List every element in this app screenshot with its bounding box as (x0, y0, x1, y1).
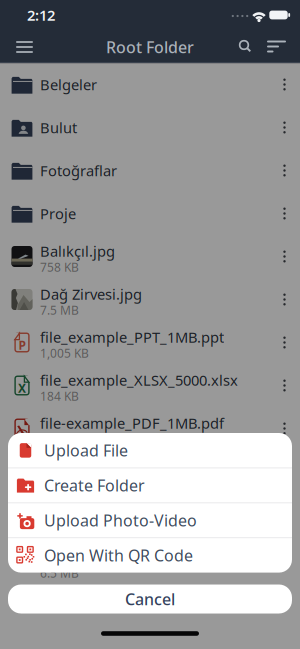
staticText: Bulut (40, 118, 77, 137)
button[interactable]: Cancel (8, 584, 292, 613)
button[interactable]: More options for Belgeler (275, 73, 293, 95)
staticText: Belgeler (40, 75, 97, 94)
button[interactable]: Upload File (8, 433, 292, 468)
staticText: Root Folder (106, 36, 194, 58)
button[interactable]: More options for file_example_PPT_1MB.pp… (275, 331, 293, 353)
staticText: Upload Photo-Video (44, 510, 197, 531)
staticText: X (18, 380, 26, 396)
button[interactable]: Upload Photo-Video (8, 503, 292, 538)
button[interactable]: More options for Balıkçıl.jpg (275, 245, 293, 267)
staticText: file-example_PDF_1MB.pdf (40, 413, 224, 433)
staticText: 7.5 MB (40, 302, 79, 318)
button[interactable]: Belgeler (0, 63, 300, 106)
staticText: Proje (40, 204, 76, 223)
staticText: 2:12 (27, 5, 55, 25)
button[interactable]: More options for Proje (275, 202, 293, 224)
button[interactable]: file_example_PPT_1MB.ppt (0, 321, 300, 364)
staticText: 6.5 MB (40, 431, 79, 447)
button[interactable]: Create Folder (8, 468, 292, 503)
button[interactable]: Dağ Zirvesi.jpg (0, 278, 300, 321)
staticText: 1,005 KB (40, 345, 89, 361)
staticText: Fotoğraflar (40, 161, 117, 180)
staticText: P (18, 337, 25, 353)
button[interactable]: Bulut (0, 106, 300, 149)
staticText: 758 KB (40, 259, 79, 275)
button[interactable]: Open With QR Code (8, 538, 292, 573)
button[interactable]: More options for Bulut (275, 116, 293, 138)
button[interactable]: More options for Dağ Zirvesi.jpg (275, 288, 293, 310)
staticText: Open With QR Code (44, 545, 193, 566)
staticText: Cancel (125, 588, 175, 610)
staticText: file_example_PPT_1MB.ppt (40, 327, 224, 347)
staticText: Upload File (44, 440, 128, 461)
button[interactable]: Search (235, 36, 257, 58)
button[interactable]: Sort (267, 38, 289, 56)
button[interactable]: More options for file_example_XLSX_5000.… (275, 374, 293, 396)
staticText: file_example_XLSX_5000.xlsx (40, 370, 238, 390)
button[interactable]: Menu (2, 37, 42, 57)
staticText: 184 KB (40, 388, 79, 404)
button[interactable]: file-example_PDF_1MB.pdf (0, 407, 300, 450)
button[interactable]: Balıkçıl.jpg (0, 235, 300, 278)
staticText: Create Folder (44, 475, 145, 496)
staticText: Dağ Zirvesi.jpg (40, 284, 142, 304)
button[interactable]: Fotoğraflar (0, 149, 300, 192)
button[interactable]: More options for file-example_PDF_1MB.pd… (275, 417, 293, 439)
button[interactable]: Proje (0, 192, 300, 235)
button[interactable]: file_example_XLSX_5000.xlsx (0, 364, 300, 407)
button[interactable]: More options for Fotoğraflar (275, 159, 293, 181)
staticText: Balıkçıl.jpg (40, 241, 115, 261)
staticText: 6.5 MB (40, 565, 79, 581)
